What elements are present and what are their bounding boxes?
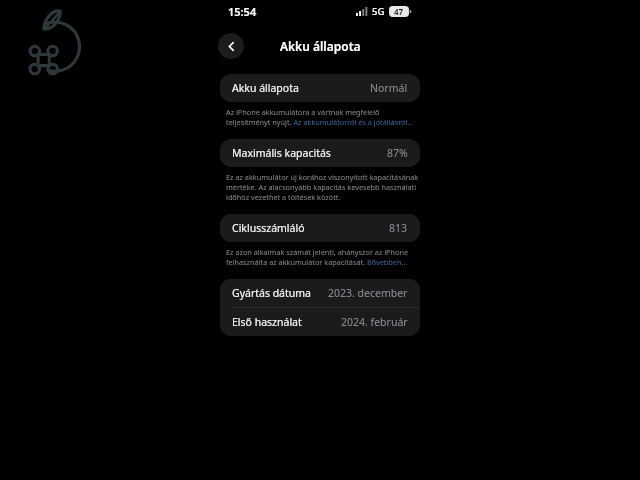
button[interactable]: Back xyxy=(218,33,244,59)
staticText: 87% xyxy=(387,146,408,160)
button[interactable]: Akku állapota xyxy=(220,74,420,102)
staticText: Akku állapota xyxy=(232,81,299,95)
staticText: Normál xyxy=(370,81,408,95)
button[interactable]: Ciklusszámláló xyxy=(220,214,420,242)
staticText: Első használat xyxy=(232,315,302,329)
staticText: 813 xyxy=(389,221,408,235)
staticText: Akku állapota xyxy=(280,38,361,54)
button[interactable]: Első használat xyxy=(220,308,420,336)
staticText: Gyártás dátuma xyxy=(232,286,312,300)
staticText: Ciklusszámláló xyxy=(232,221,305,235)
staticText: 2024. február xyxy=(341,315,408,329)
button[interactable]: Maximális kapacitás xyxy=(220,139,420,167)
staticText: 47 xyxy=(394,6,404,17)
staticText: Az iPhone akkumulátora a vártnak megfele… xyxy=(226,107,419,127)
button[interactable]: Gyártás dátuma xyxy=(220,279,420,307)
staticText: Ez az akkumulátor új korához viszonyítot… xyxy=(226,172,419,202)
staticText: Ez azon alkalmak számát jelenti, ahánysz… xyxy=(226,247,419,267)
staticText: 2023. december xyxy=(328,286,408,300)
staticText: Maximális kapacitás xyxy=(232,146,331,160)
staticText: 15:54 xyxy=(228,4,257,19)
staticText: 5G xyxy=(372,5,385,18)
